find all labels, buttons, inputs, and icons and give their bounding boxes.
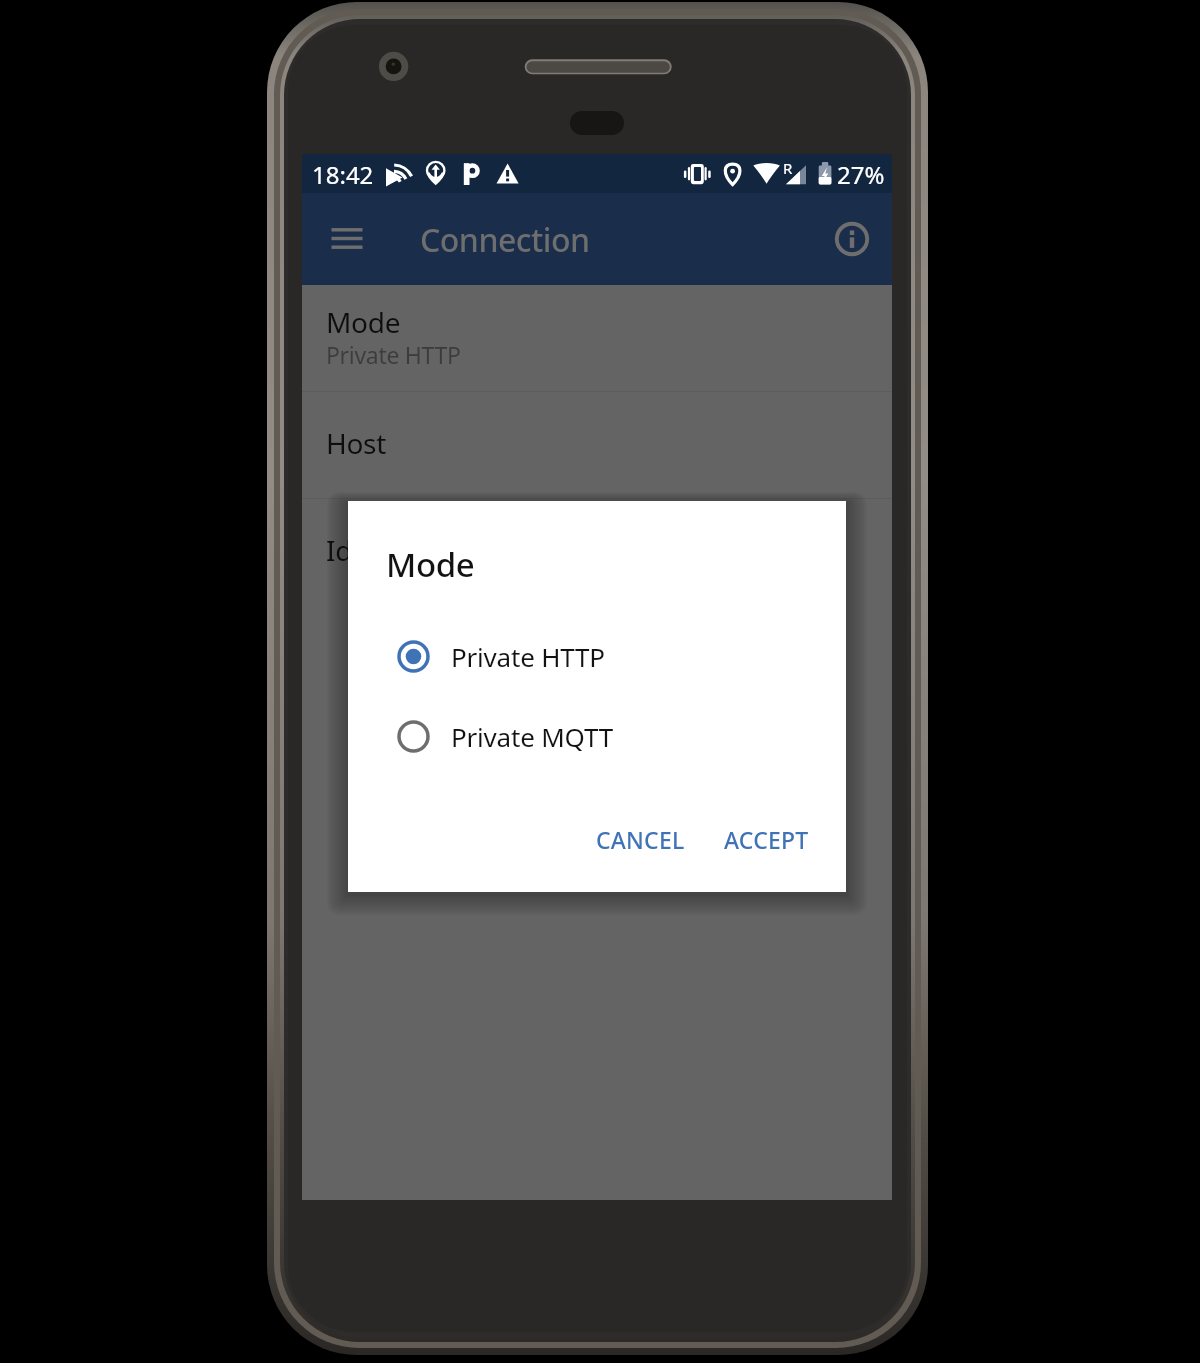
staticText: Mode [326,303,401,341]
button[interactable]: Id [302,499,892,605]
button[interactable]: Open navigation menu [318,210,376,268]
staticText: Private HTTP [451,639,605,674]
button[interactable]: Mode [302,285,892,391]
staticText: 27% [837,158,885,191]
staticText: Mode [386,542,475,587]
button[interactable]: Private HTTP [348,629,846,684]
staticText: Host [326,424,387,462]
button[interactable]: ACCEPT [716,814,817,865]
staticText: Id [326,531,353,569]
staticText: Private HTTP [326,339,461,370]
button[interactable]: Private MQTT [348,709,846,764]
staticText: CANCEL [596,824,685,855]
button[interactable]: Host [302,392,892,498]
staticText: Connection [420,218,590,262]
staticText: R [783,158,793,178]
button[interactable]: CANCEL [588,814,693,865]
staticText: Private MQTT [451,719,613,754]
staticText: ACCEPT [724,824,809,855]
staticText: 18:42 [312,158,374,191]
button[interactable]: Information [823,210,881,268]
